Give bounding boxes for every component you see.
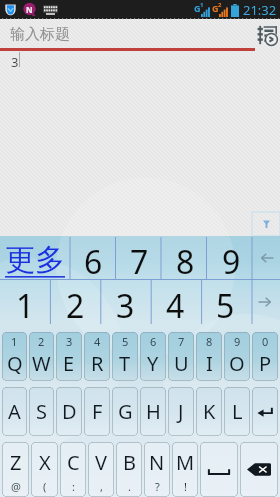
staticText: U — [174, 350, 189, 377]
staticText: 输入标题 — [10, 25, 70, 44]
staticText: D — [62, 398, 77, 425]
staticText: 2 — [66, 284, 85, 328]
button[interactable]: 7 — [116, 236, 162, 279]
button[interactable]: S — [29, 387, 54, 436]
staticText: 0 — [262, 334, 269, 349]
button[interactable]: Z — [2, 442, 29, 497]
staticText: M — [176, 449, 195, 476]
staticText: 21:32 — [243, 1, 277, 19]
staticText: 7 — [178, 334, 185, 349]
staticText: G — [118, 398, 133, 425]
staticText: W — [32, 350, 51, 377]
button[interactable]: 5 — [200, 279, 250, 324]
button[interactable]: K — [196, 387, 222, 436]
staticText: T — [119, 350, 131, 377]
staticText: 9 — [234, 334, 241, 349]
button[interactable]: 1 — [0, 279, 50, 324]
button[interactable]: B — [116, 442, 142, 497]
button[interactable]: 6 — [140, 332, 166, 381]
staticText: C — [67, 449, 80, 476]
staticText: . — [128, 479, 131, 494]
staticText: 3 — [116, 284, 135, 328]
staticText: H — [146, 398, 161, 425]
staticText: K — [203, 398, 216, 425]
button[interactable]: Note list — [257, 25, 277, 45]
button[interactable]: 1 — [2, 332, 27, 381]
button[interactable]: 7 — [168, 332, 194, 381]
button[interactable]: 3 — [100, 279, 150, 324]
staticText: 5 — [122, 334, 129, 349]
staticText: 6 — [84, 240, 103, 283]
staticText: Z — [10, 449, 22, 476]
button[interactable]: 2 — [50, 279, 100, 324]
button[interactable]: H — [140, 387, 166, 436]
button[interactable]: L — [224, 387, 250, 436]
button[interactable]: 更多 — [0, 236, 70, 279]
button[interactable]: 4 — [150, 279, 200, 324]
button[interactable]: 0 — [252, 332, 278, 381]
staticText: G — [194, 2, 201, 14]
button[interactable]: D — [56, 387, 82, 436]
staticText: 1 — [11, 334, 18, 349]
button[interactable]: N — [144, 442, 170, 497]
button[interactable]: X — [31, 442, 58, 497]
button[interactable]: 8 — [162, 236, 208, 279]
staticText: 8 — [206, 334, 213, 349]
staticText: N — [149, 449, 165, 476]
button[interactable]: J — [168, 387, 194, 436]
staticText: L — [232, 398, 243, 425]
staticText: ( — [43, 479, 47, 494]
staticText: @ — [11, 479, 21, 494]
staticText: F — [92, 398, 103, 425]
staticText: 1 — [16, 284, 35, 328]
button[interactable]: V — [88, 442, 114, 497]
button[interactable] — [200, 442, 238, 497]
staticText: 5 — [216, 284, 235, 328]
button[interactable]: M — [172, 442, 198, 497]
staticText: Q — [7, 350, 23, 377]
button[interactable]: C — [60, 442, 86, 497]
staticText: 7 — [130, 240, 149, 283]
staticText: R — [91, 350, 104, 377]
button[interactable] — [252, 387, 278, 436]
button[interactable]: 9 — [208, 236, 254, 279]
button[interactable]: 5 — [112, 332, 138, 381]
staticText: 6 — [150, 334, 157, 349]
button[interactable]: Previous page — [254, 236, 280, 279]
staticText: P — [259, 350, 272, 377]
staticText: ! — [184, 479, 187, 494]
button[interactable]: F — [84, 387, 110, 436]
button[interactable]: 6 — [70, 236, 116, 279]
staticText: 4 — [94, 334, 101, 349]
staticText: 9 — [222, 240, 241, 283]
staticText: 2 — [38, 334, 45, 349]
staticText: 4 — [166, 284, 185, 328]
staticText: , — [100, 479, 103, 494]
button[interactable]: 3 — [56, 332, 82, 381]
staticText: 2 — [218, 1, 222, 9]
staticText: : — [72, 479, 75, 494]
button[interactable]: A — [2, 387, 27, 436]
button[interactable]: 4 — [84, 332, 110, 381]
button[interactable]: G — [112, 387, 138, 436]
staticText: 3 — [66, 334, 73, 349]
button[interactable]: 2 — [29, 332, 54, 381]
button[interactable]: 9 — [224, 332, 250, 381]
button[interactable]: Input tool — [252, 212, 280, 236]
staticText: E — [63, 350, 75, 377]
staticText: 3 — [11, 53, 19, 71]
staticText: 8 — [176, 240, 195, 283]
staticText: A — [8, 398, 21, 425]
staticText: G — [212, 2, 219, 14]
staticText: Y — [147, 350, 159, 377]
button[interactable]: 8 — [196, 332, 222, 381]
staticText: 更多 — [5, 241, 65, 279]
button[interactable]: Next page — [250, 279, 280, 324]
staticText: S — [36, 398, 47, 425]
staticText: J — [178, 398, 184, 425]
staticText: N — [26, 4, 33, 15]
button[interactable] — [240, 442, 278, 497]
staticText: X — [39, 449, 51, 476]
staticText: V — [95, 449, 107, 476]
staticText: B — [123, 449, 136, 476]
